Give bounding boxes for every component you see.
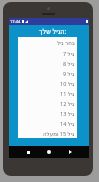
staticText: גיל 15 ומעלה bbox=[43, 130, 75, 137]
button[interactable]: גיל 11 bbox=[18, 88, 77, 98]
staticText: הגיל שלך: bbox=[39, 27, 67, 36]
staticText: גיל 13 bbox=[60, 110, 75, 117]
button[interactable]: Home bbox=[44, 147, 54, 157]
staticText: גיל 14 bbox=[60, 120, 75, 127]
button[interactable]: גיל 14 bbox=[18, 118, 77, 128]
button[interactable]: גיל 12 bbox=[18, 98, 77, 108]
button[interactable]: גיל 15 ומעלה bbox=[18, 128, 77, 138]
staticText: גיל 11 bbox=[60, 90, 75, 97]
button[interactable]: Back bbox=[65, 147, 75, 157]
button[interactable]: גיל 13 bbox=[18, 108, 77, 118]
staticText: גיל 12 bbox=[60, 100, 75, 107]
button[interactable]: גיל 8 bbox=[18, 58, 77, 68]
staticText: גיל 10 bbox=[60, 80, 75, 87]
staticText: בחר גיל bbox=[57, 39, 75, 46]
staticText: גיל 7 bbox=[63, 50, 75, 57]
button[interactable]: גיל 10 bbox=[18, 78, 77, 88]
button[interactable]: גיל 9 bbox=[18, 68, 77, 78]
button[interactable]: Recents bbox=[23, 147, 33, 157]
staticText: 17:44 bbox=[10, 19, 21, 24]
staticText: גיל 8 bbox=[63, 60, 75, 67]
button[interactable]: בחר גיל bbox=[18, 37, 77, 48]
staticText: גיל 9 bbox=[63, 70, 75, 77]
button[interactable]: גיל 7 bbox=[18, 48, 77, 58]
